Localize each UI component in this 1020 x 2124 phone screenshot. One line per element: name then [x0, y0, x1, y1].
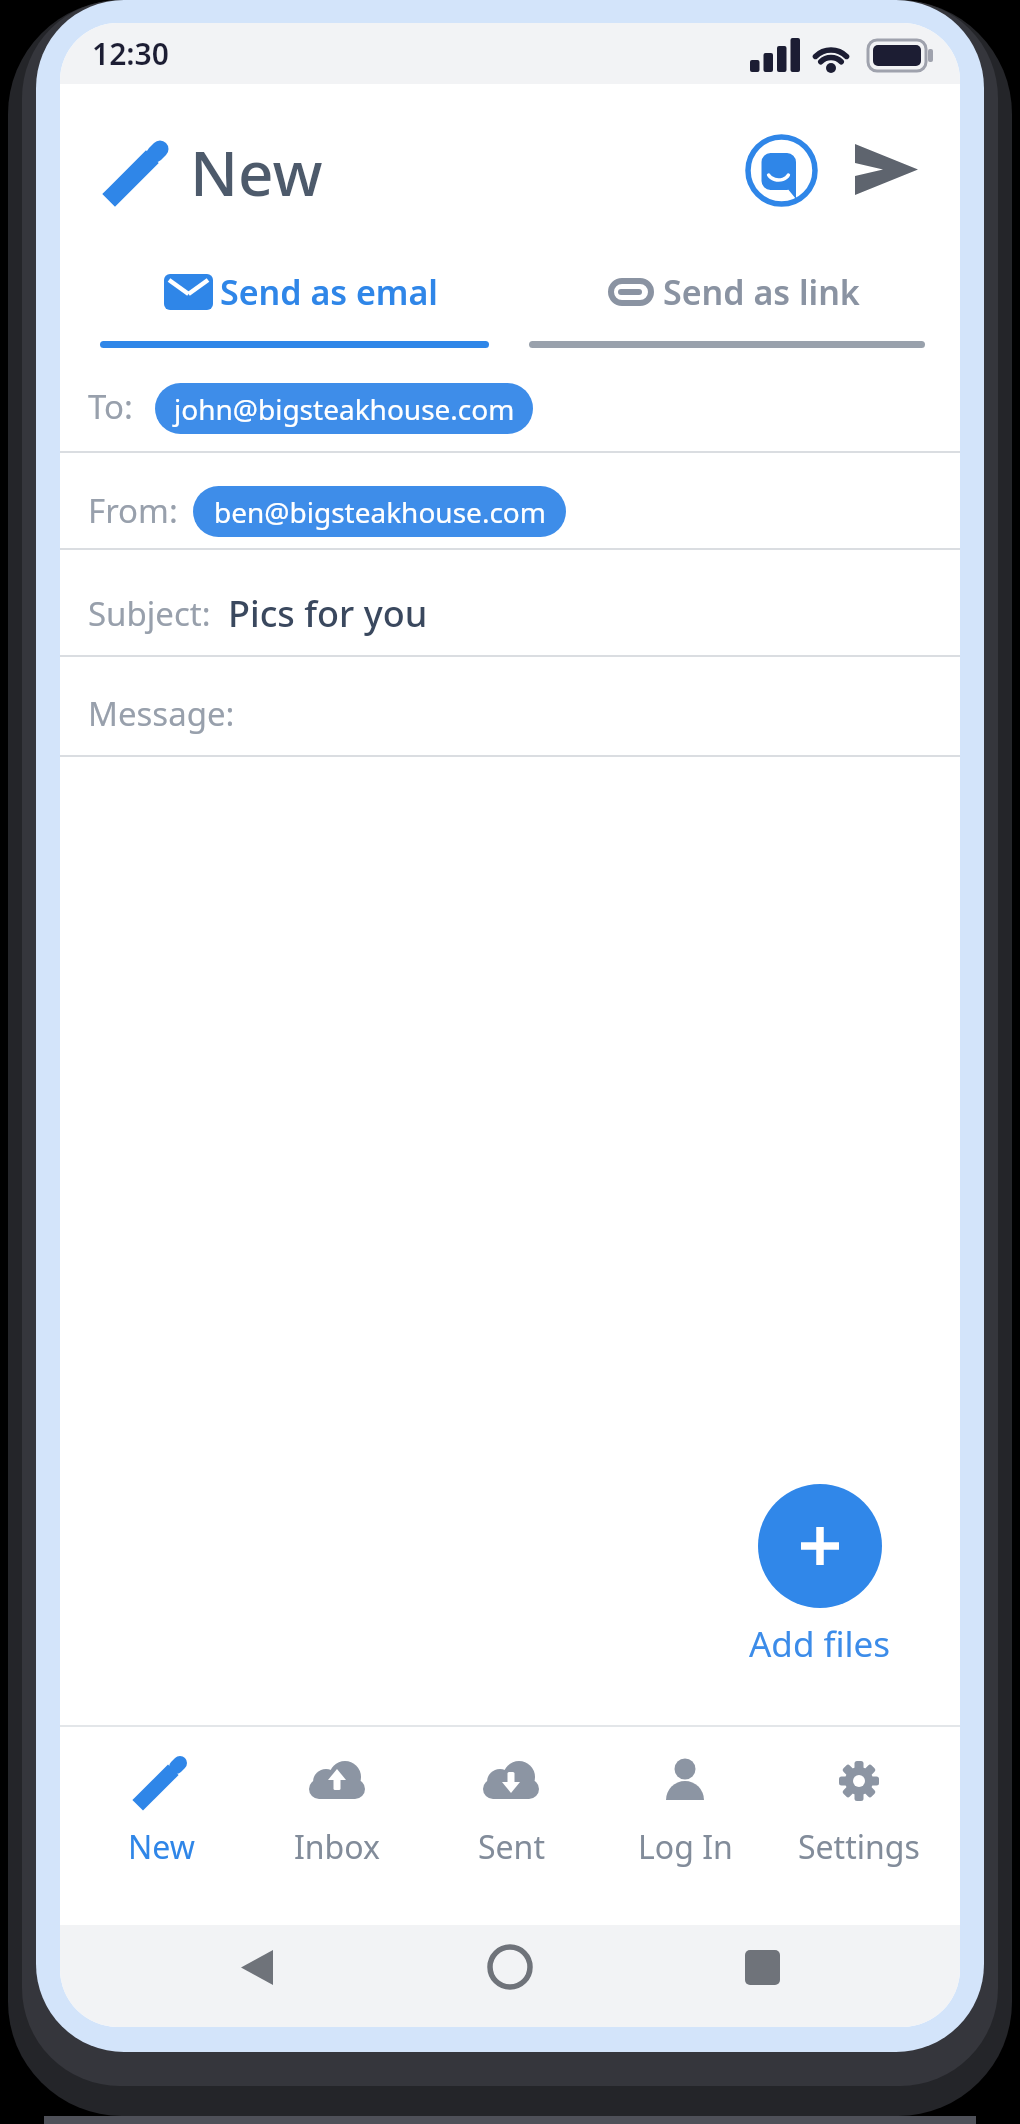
staticText: Add files	[749, 1620, 891, 1668]
button[interactable]: john@bigsteakhouse.com	[155, 383, 533, 434]
button[interactable]: Settings	[772, 1727, 946, 1925]
button[interactable]	[226, 1937, 288, 1999]
button[interactable]	[758, 1484, 882, 1608]
staticText: New	[128, 1825, 195, 1869]
button[interactable]	[60, 353, 960, 451]
button[interactable]: New	[74, 1727, 249, 1925]
button[interactable]: Send as emal	[100, 263, 489, 353]
button[interactable]	[732, 1937, 794, 1999]
button[interactable]: Sent	[424, 1727, 598, 1925]
staticText: Settings	[798, 1825, 920, 1869]
button[interactable]	[743, 132, 820, 209]
button[interactable]	[848, 136, 926, 204]
button[interactable]	[60, 550, 960, 655]
staticText: Send as emal	[220, 269, 438, 315]
staticText: Log In	[638, 1825, 733, 1869]
button[interactable]: Send as link	[529, 263, 925, 353]
staticText: Inbox	[294, 1825, 380, 1869]
staticText: Send as link	[663, 269, 860, 315]
button[interactable]: ben@bigsteakhouse.com	[193, 486, 566, 537]
button[interactable]	[60, 657, 960, 755]
staticText: john@bigsteakhouse.com	[174, 390, 515, 428]
button[interactable]	[60, 453, 960, 548]
staticText: Message:	[88, 691, 235, 736]
button[interactable]: Add files	[710, 1618, 930, 1670]
staticText: To:	[88, 384, 133, 429]
staticText: From:	[88, 488, 178, 533]
staticText: Pics for you	[228, 589, 428, 638]
button[interactable]	[479, 1936, 541, 1998]
staticText: Sent	[478, 1825, 545, 1869]
button[interactable]: Log In	[598, 1727, 772, 1925]
staticText: Subject:	[88, 591, 211, 636]
staticText: New	[190, 130, 323, 210]
staticText: 12:30	[92, 33, 169, 74]
staticText: ben@bigsteakhouse.com	[214, 493, 546, 531]
button[interactable]: Inbox	[249, 1727, 424, 1925]
